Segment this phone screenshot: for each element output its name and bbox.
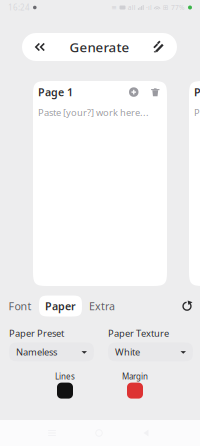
button[interactable]: Extra: [82, 296, 122, 316]
staticText: Margin: [122, 371, 148, 382]
staticText: Paper Texture: [108, 327, 169, 339]
button[interactable]: Font: [1, 296, 39, 316]
button[interactable]: Generate: [143, 33, 173, 61]
staticText: Lines: [55, 371, 75, 382]
staticText: Paper Preset: [9, 327, 64, 339]
button[interactable]: Margin colour: [127, 382, 143, 399]
button[interactable]: Add page: [127, 85, 140, 99]
staticText: ⊞: [163, 4, 169, 11]
staticText: Paste [your?] work here...: [194, 106, 200, 119]
staticText: all: [128, 3, 136, 12]
button[interactable]: Refresh: [175, 296, 199, 316]
button[interactable]: White: [108, 342, 193, 361]
staticText: Paste [your?] work here...: [38, 106, 149, 119]
staticText: Page 2: [194, 85, 200, 99]
button[interactable]: Nameless: [9, 342, 94, 361]
staticText: Page 1: [38, 85, 73, 99]
button[interactable]: Delete page: [140, 85, 162, 99]
staticText: Generate: [69, 38, 129, 56]
staticText: Extra: [89, 299, 115, 313]
button[interactable]: Paper: [39, 295, 82, 316]
button[interactable]: Back: [25, 33, 55, 61]
staticText: 77%: [171, 3, 185, 12]
staticText: Font: [8, 299, 31, 313]
staticText: White: [115, 346, 140, 358]
staticText: 16:24: [8, 2, 30, 13]
staticText: ·ıl: [146, 3, 152, 12]
staticText: Paper: [45, 299, 76, 313]
staticText: ≡: [111, 4, 117, 11]
button[interactable]: Lines colour: [57, 382, 73, 399]
staticText: Nameless: [16, 346, 57, 358]
